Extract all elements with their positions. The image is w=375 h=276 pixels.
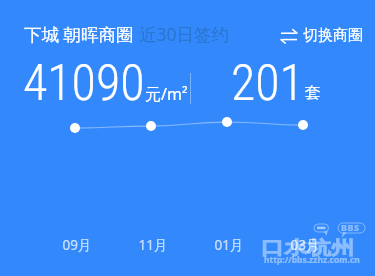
staticText: 201 xyxy=(231,54,304,113)
staticText: 01月 xyxy=(205,236,253,254)
staticText: 口水杭州 xyxy=(261,237,355,260)
staticText: 11月 xyxy=(129,236,177,254)
staticText: 切换商圈 xyxy=(303,26,363,45)
staticText: 下城 朝晖商圈 xyxy=(24,22,139,46)
staticText: http://bbs.zzhz.com.cn xyxy=(264,254,360,266)
staticText: 元/m² xyxy=(145,83,188,105)
staticText: BBS xyxy=(341,221,360,233)
staticText: 41090 xyxy=(23,54,145,113)
button[interactable]: 下城 朝晖商圈 xyxy=(24,22,230,46)
staticText: 套 xyxy=(305,83,321,103)
staticText: 09月 xyxy=(53,236,101,254)
button[interactable]: 切换商圈 xyxy=(281,26,363,45)
staticText: 近30日签约 xyxy=(139,22,230,46)
staticText: 03月 xyxy=(281,236,329,254)
